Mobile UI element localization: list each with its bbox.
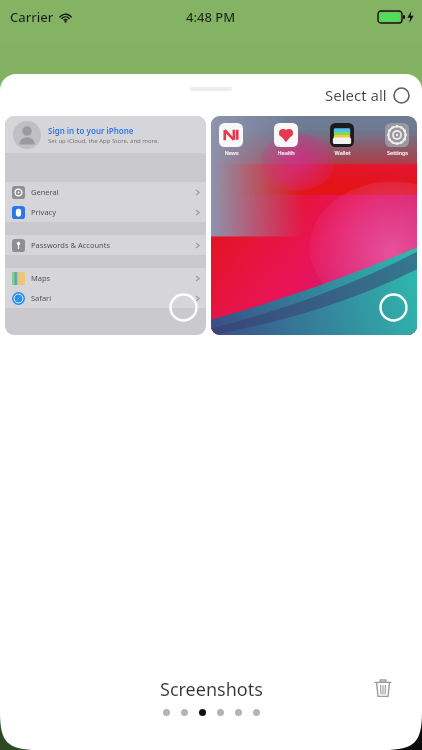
button[interactable]: Select all — [325, 85, 410, 105]
button[interactable]: Delete — [366, 671, 400, 705]
staticText: Sign in to your iPhone — [48, 125, 134, 136]
staticText: News — [224, 149, 239, 156]
button[interactable]: Safari — [12, 288, 200, 308]
staticText: Settings — [387, 149, 408, 156]
staticText: Privacy — [31, 207, 57, 217]
staticText: Select all — [325, 85, 387, 105]
button[interactable]: Maps — [12, 268, 200, 288]
button[interactable]: News — [211, 116, 417, 335]
staticText: Health — [277, 149, 295, 156]
staticText: Maps — [31, 273, 51, 283]
button[interactable]: Passwords & Accounts — [12, 235, 200, 255]
staticText: General — [31, 187, 59, 197]
staticText: Screenshots — [160, 677, 263, 702]
staticText: Wallet — [334, 149, 351, 156]
staticText: Safari — [31, 293, 52, 303]
staticText: Carrier — [10, 8, 54, 26]
staticText: Set up iCloud, the App Store, and more. — [48, 137, 159, 145]
button[interactable]: General — [12, 182, 200, 202]
button[interactable]: Sign in to your iPhone — [5, 116, 206, 335]
staticText: 4:48 PM — [186, 8, 236, 26]
button[interactable]: Privacy — [12, 202, 200, 222]
staticText: Passwords & Accounts — [31, 240, 111, 250]
